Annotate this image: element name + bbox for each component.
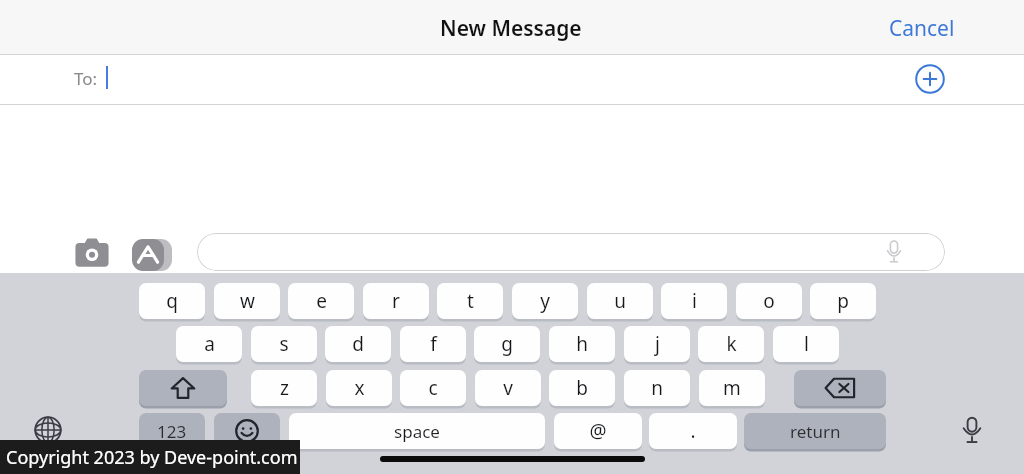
button[interactable]: u [587,283,653,319]
button[interactable]: Dictate [954,412,990,448]
staticText: l [804,331,809,357]
staticText: j [655,331,660,357]
button[interactable]: x [326,370,392,406]
staticText: Cancel [889,14,955,43]
button[interactable]: o [736,283,802,319]
staticText: b [576,375,588,401]
button[interactable]: Change keyboard [30,412,66,448]
button[interactable]: g [474,326,540,362]
button[interactable]: . [649,413,737,449]
staticText: To: [74,67,98,90]
button[interactable]: h [549,326,615,362]
button[interactable]: Backspace [794,370,886,406]
staticText: q [166,288,178,314]
button[interactable]: s [251,326,317,362]
button[interactable]: i [661,283,727,319]
button[interactable]: m [699,370,765,406]
staticText: v [503,375,513,401]
staticText: g [501,331,513,357]
staticText: d [352,331,364,357]
button[interactable]: y [512,283,578,319]
button[interactable]: @ [554,413,642,449]
staticText: c [428,375,438,401]
staticText: x [354,375,365,401]
staticText: New Message [440,14,582,43]
button[interactable] [197,233,945,271]
staticText: m [723,375,741,401]
button[interactable]: Camera [72,233,112,273]
button[interactable]: e [288,283,354,319]
staticText: u [614,288,626,314]
staticText: Copyright 2023 by Deve-point.com [6,445,298,470]
staticText: r [392,288,400,314]
staticText: n [651,375,663,401]
button[interactable]: r [363,283,429,319]
staticText: return [790,420,841,443]
button[interactable]: 123 [139,413,205,449]
button[interactable]: space [289,413,545,449]
staticText: a [204,331,215,357]
button[interactable]: w [214,283,280,319]
staticText: i [692,288,697,314]
staticText: t [467,288,474,314]
button[interactable]: c [400,370,466,406]
button[interactable]: Emoji [214,413,280,449]
button[interactable]: d [325,326,391,362]
staticText: . [690,418,696,444]
button[interactable]: t [437,283,503,319]
staticText: @ [589,418,607,444]
button[interactable]: f [400,326,466,362]
button[interactable]: b [549,370,615,406]
button[interactable]: Shift [139,370,227,406]
staticText: k [726,331,737,357]
button[interactable]: v [475,370,541,406]
staticText: space [394,420,440,443]
staticText: y [540,288,550,314]
staticText: 123 [157,420,187,443]
button[interactable]: Cancel [872,10,972,46]
button[interactable]: l [773,326,839,362]
staticText: s [279,331,289,357]
button[interactable]: Add contact [912,61,948,97]
button[interactable]: return [744,413,886,449]
button[interactable]: App Store [130,233,174,277]
button[interactable]: j [624,326,690,362]
staticText: z [280,375,289,401]
button[interactable]: z [251,370,317,406]
button[interactable]: q [139,283,205,319]
staticText: o [763,288,775,314]
staticText: e [316,288,327,314]
button[interactable] [0,55,1024,105]
staticText: w [240,288,255,314]
button[interactable]: n [624,370,690,406]
staticText: f [430,331,437,357]
button[interactable]: a [176,326,242,362]
staticText: h [576,331,588,357]
button[interactable]: p [810,283,876,319]
staticText: p [837,288,849,314]
button[interactable]: k [698,326,764,362]
